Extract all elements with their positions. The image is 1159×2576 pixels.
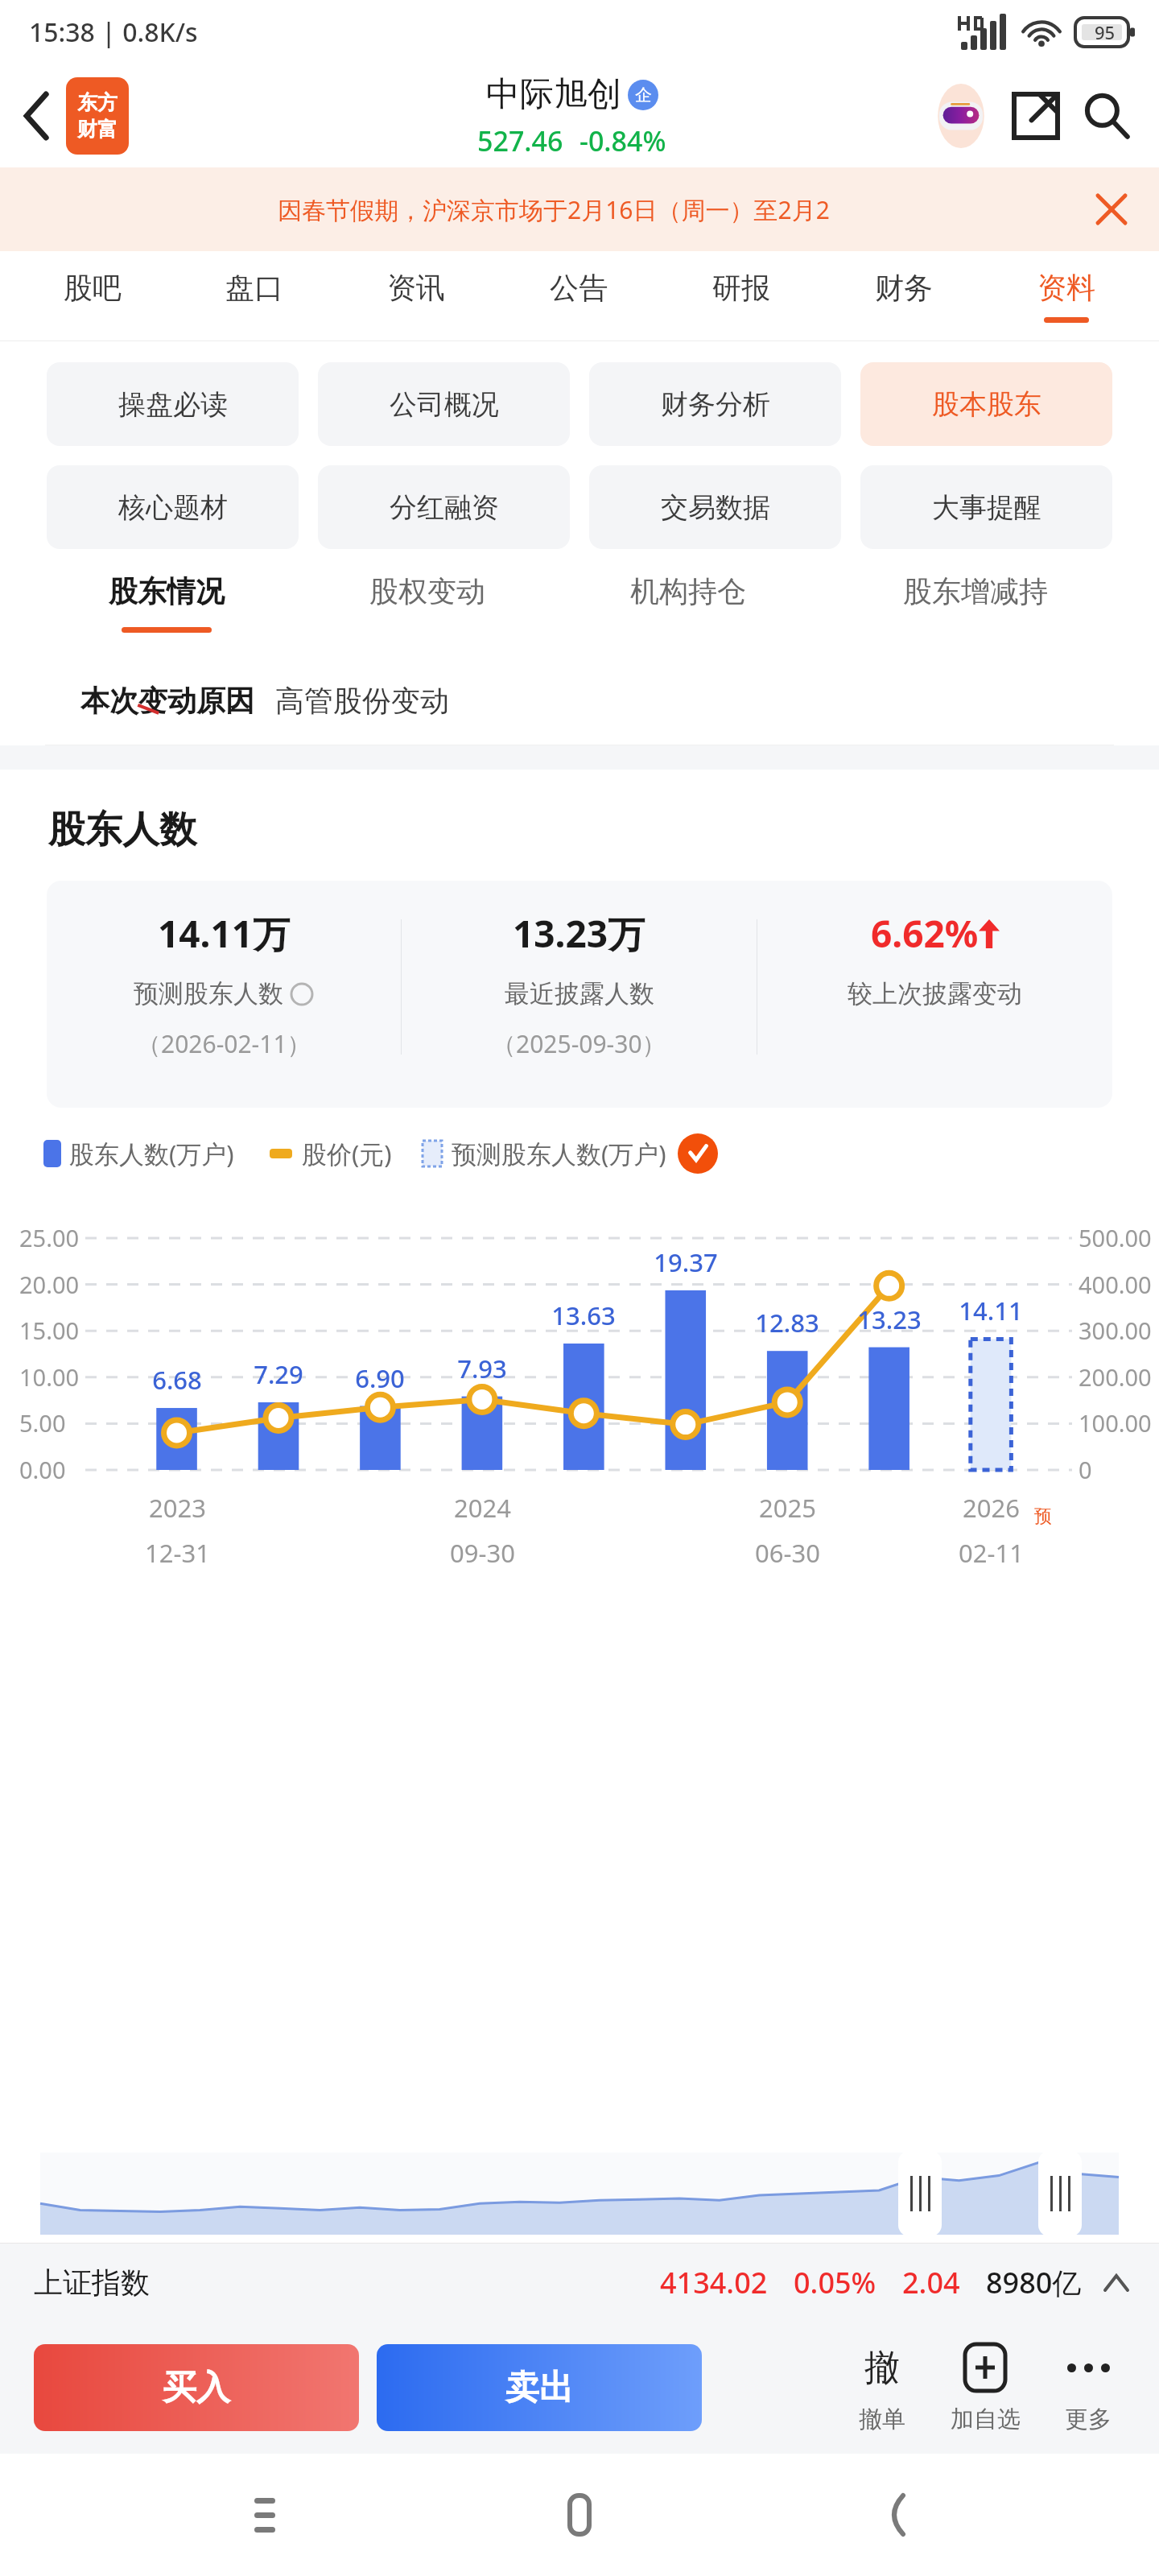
- staticText: 2025: [759, 1491, 816, 1525]
- staticText: 企: [635, 85, 652, 105]
- staticText: 股权变动: [369, 573, 485, 609]
- button[interactable]: Expand index panel: [1098, 2264, 1135, 2301]
- staticText: 撤: [864, 2346, 900, 2390]
- button[interactable]: Share: [1001, 81, 1070, 151]
- staticText: 2026: [963, 1491, 1020, 1525]
- staticText: 6.62%: [871, 908, 979, 959]
- button[interactable]: 股东增减持: [819, 573, 1132, 655]
- staticText: 买入: [163, 2367, 230, 2409]
- staticText: 资料: [1037, 270, 1095, 306]
- staticText: 公司概况: [390, 387, 499, 422]
- staticText: 上证指数: [34, 2264, 150, 2301]
- button[interactable]: 研报: [660, 251, 823, 341]
- button[interactable]: Range end: [1038, 2151, 1082, 2236]
- staticText: 东方: [77, 90, 118, 115]
- staticText: 12-31: [145, 1536, 210, 1570]
- button[interactable]: 公告: [497, 251, 660, 341]
- staticText: 因春节假期，沪深京市场于2月16日（周一）至2月2: [278, 193, 830, 226]
- staticText: 09-30: [450, 1536, 515, 1570]
- staticText: 股价(元): [302, 1137, 392, 1170]
- staticText: 300.00: [1079, 1315, 1152, 1346]
- button[interactable]: 操盘必读: [47, 362, 299, 446]
- button[interactable]: 股东情况: [35, 573, 297, 655]
- button[interactable]: Close notice: [1085, 183, 1138, 236]
- staticText: 100.00: [1079, 1407, 1152, 1439]
- staticText: 最近披露人数: [505, 978, 654, 1009]
- staticText: 527.46: [477, 122, 563, 159]
- staticText: 2024: [454, 1491, 511, 1525]
- staticText: 研报: [712, 270, 770, 306]
- staticText: 5.00: [19, 1407, 66, 1439]
- staticText: 15:38 | 0.8K/s: [29, 14, 198, 50]
- button[interactable]: 分红融资: [318, 465, 570, 549]
- staticText: 股东人数: [48, 807, 196, 853]
- staticText: 更多: [1065, 2405, 1112, 2434]
- staticText: 较上次披露变动: [848, 978, 1022, 1009]
- button[interactable]: 股本股东: [860, 362, 1112, 446]
- staticText: 0: [1079, 1454, 1092, 1485]
- button[interactable]: 资料: [985, 251, 1148, 341]
- button[interactable]: AI assistant: [924, 79, 998, 153]
- staticText: 200.00: [1079, 1361, 1152, 1393]
- staticText: 13.23万: [513, 908, 645, 959]
- staticText: 8980亿: [986, 2263, 1082, 2302]
- staticText: 股东增减持: [903, 573, 1048, 609]
- button[interactable]: 更多: [1037, 2322, 1140, 2454]
- button[interactable]: 资讯: [335, 251, 497, 341]
- button[interactable]: Search: [1072, 81, 1141, 151]
- staticText: 7.93: [442, 1352, 522, 1385]
- button[interactable]: 公司概况: [318, 362, 570, 446]
- staticText: 预测股东人数: [134, 978, 283, 1009]
- button[interactable]: 撤: [831, 2322, 934, 2454]
- button[interactable]: Range start: [898, 2151, 942, 2236]
- staticText: 25.00: [19, 1222, 80, 1253]
- button[interactable]: 加自选: [934, 2322, 1037, 2454]
- staticText: 2.04: [902, 2263, 960, 2302]
- staticText: 股吧: [64, 270, 122, 306]
- staticText: （2026-02-11）: [137, 1027, 311, 1060]
- staticText: 14.11: [951, 1294, 1031, 1327]
- staticText: 公告: [550, 270, 608, 306]
- staticText: 500.00: [1079, 1222, 1152, 1253]
- button[interactable]: 卖出: [377, 2344, 702, 2431]
- staticText: 20.00: [19, 1269, 80, 1300]
- button[interactable]: 东方: [66, 77, 129, 155]
- button[interactable]: Back: [844, 2465, 944, 2565]
- button[interactable]: 买入: [34, 2344, 359, 2431]
- button[interactable]: Home: [530, 2465, 629, 2565]
- staticText: 06-30: [755, 1536, 820, 1570]
- staticText: 13.23: [849, 1302, 930, 1336]
- staticText: 02-11: [959, 1536, 1024, 1570]
- button[interactable]: 财务: [823, 251, 985, 341]
- button[interactable]: Recent apps: [215, 2465, 315, 2565]
- button[interactable]: 交易数据: [589, 465, 841, 549]
- button[interactable]: 股吧: [11, 251, 173, 341]
- button[interactable]: 机构持仓: [558, 573, 819, 655]
- button[interactable]: 股权变动: [297, 573, 558, 655]
- staticText: 大事提醒: [932, 490, 1041, 525]
- staticText: 95: [1095, 20, 1116, 44]
- button[interactable]: Toggle forecast series: [678, 1133, 718, 1174]
- staticText: 0.05%: [794, 2263, 876, 2302]
- button[interactable]: 核心题材: [47, 465, 299, 549]
- staticText: 高管股份变动: [275, 683, 449, 719]
- button[interactable]: 财务分析: [589, 362, 841, 446]
- staticText: 10.00: [19, 1361, 80, 1393]
- staticText: 400.00: [1079, 1269, 1152, 1300]
- staticText: 核心题材: [118, 490, 228, 525]
- staticText: 盘口: [225, 270, 283, 306]
- staticText: 6.68: [137, 1363, 217, 1397]
- staticText: 机构持仓: [630, 573, 746, 609]
- button[interactable]: 本次变动原因: [45, 655, 1114, 745]
- button[interactable]: 大事提醒: [860, 465, 1112, 549]
- staticText: 14.11万: [158, 908, 291, 959]
- staticText: 7.29: [238, 1357, 319, 1391]
- staticText: 财富: [77, 117, 118, 142]
- staticText: 6.90: [340, 1361, 420, 1395]
- staticText: -0.84%: [579, 122, 666, 159]
- staticText: 资讯: [387, 270, 445, 306]
- button[interactable]: 盘口: [173, 251, 335, 341]
- staticText: 股东人数(万户): [69, 1137, 234, 1170]
- staticText: 财务分析: [661, 387, 770, 422]
- button[interactable]: Back: [6, 85, 68, 147]
